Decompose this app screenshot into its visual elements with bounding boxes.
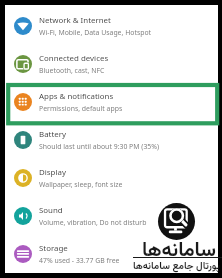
staticText: Sound (39, 205, 63, 216)
staticText: سامانه‌ها (142, 235, 216, 266)
button[interactable]: Storage (5, 235, 218, 273)
staticText: Bluetooth, cast, NFC (39, 66, 105, 75)
staticText: Battery (39, 129, 66, 140)
staticText: Wi-Fi, Mobile, Data Usage, Hotspot (39, 28, 152, 37)
button[interactable]: Display (5, 159, 218, 197)
staticText: Apps & notifications (39, 91, 114, 102)
button[interactable]: Sound (5, 197, 218, 235)
staticText: Display (39, 167, 66, 178)
staticText: 47% used - 33.77 GB free (39, 256, 120, 265)
staticText: Permissions, default apps (39, 104, 123, 113)
button[interactable]: Battery (5, 121, 218, 159)
staticText: Should last until about 9:30 PM (35%) (39, 142, 160, 151)
button[interactable]: Connected devices (5, 45, 218, 83)
staticText: Connected devices (39, 53, 109, 64)
staticText: Storage (39, 243, 68, 254)
staticText: Volume, vibration, Do not disturb (39, 218, 147, 227)
button[interactable]: Apps & notifications (5, 83, 218, 121)
staticText: Network & Internet (39, 15, 111, 26)
staticText: پورتال جامع سامانه‌ها (133, 259, 221, 275)
staticText: Wallpaper, sleep, font size (39, 180, 123, 189)
button[interactable]: Network & Internet (5, 7, 218, 45)
